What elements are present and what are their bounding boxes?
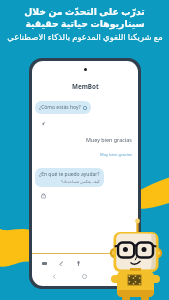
button[interactable]: ¿En qué te puedo ayudar? — [35, 168, 104, 187]
button[interactable]: Home — [80, 272, 89, 281]
staticText: ¿Cómo estás hoy? — [39, 104, 81, 111]
staticText: تدرّب على التحدّث من خلال — [24, 5, 145, 18]
button[interactable]: Microphone — [74, 259, 83, 268]
staticText: Muy bien gracias — [100, 152, 132, 157]
staticText: مع شريكنا اللغوي المدعوم بالذكاء الاصطنا… — [7, 31, 163, 42]
button[interactable]: ¿Cómo estás hoy? — [35, 101, 91, 114]
button[interactable]: Camera — [40, 259, 49, 268]
button[interactable]: Attach — [57, 259, 66, 268]
other: MemBot mascot — [0, 0, 169, 300]
staticText: Muey bien gracias — [86, 136, 132, 143]
staticText: ¿En qué te puedo ayudar? — [39, 171, 100, 178]
staticText: MemBot — [72, 82, 99, 91]
staticText: كيف يمكنني مساعدتك؟ — [61, 179, 100, 184]
button[interactable]: Back — [50, 272, 59, 281]
staticText: سيناريوهات حياتية حقيقية — [25, 17, 145, 30]
